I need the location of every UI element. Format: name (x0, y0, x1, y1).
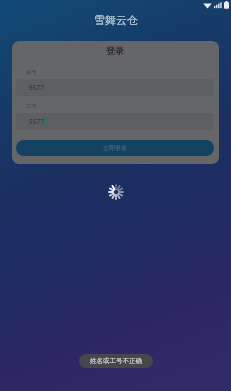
staticText: 5577 (29, 83, 44, 92)
staticText: 5577 (29, 117, 44, 126)
button[interactable]: 5577 (16, 113, 214, 130)
staticText: 姓名或工号不正确 (90, 357, 142, 365)
button[interactable]: 立即登录 (16, 140, 214, 156)
staticText: 立即登录 (103, 144, 127, 152)
staticText: 工号 (26, 103, 37, 110)
staticText: 账号 (26, 69, 37, 76)
staticText: 登录 (106, 45, 124, 56)
staticText: 雪舞云仓 (94, 13, 138, 27)
